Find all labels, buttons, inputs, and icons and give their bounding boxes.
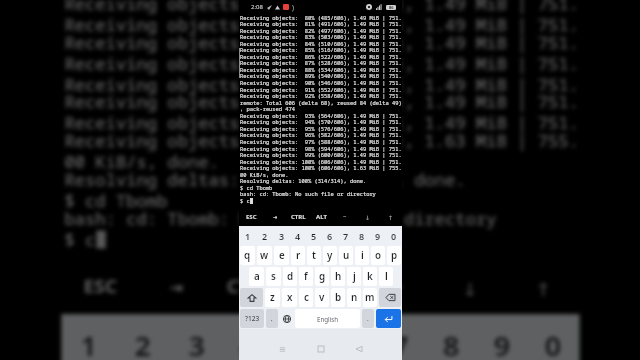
button[interactable]: 8 (427, 314, 478, 360)
button[interactable]: y (323, 246, 337, 265)
button[interactable]: z (265, 288, 280, 307)
button[interactable]: 0 (386, 226, 402, 245)
button[interactable]: a (249, 267, 264, 286)
staticText: ↓ (365, 214, 371, 221)
button[interactable]: − (333, 208, 356, 226)
button[interactable]: c (299, 288, 313, 307)
button[interactable]: ↑ (379, 208, 402, 226)
button[interactable]: l (379, 267, 393, 286)
button[interactable]: ↓ (356, 208, 379, 226)
button[interactable]: e (274, 246, 289, 265)
button[interactable]: Enter (376, 309, 401, 328)
button[interactable]: 1 (61, 314, 115, 360)
button[interactable]: d (283, 267, 297, 286)
button[interactable]: . (362, 309, 374, 328)
button[interactable]: f (299, 267, 313, 286)
staticText: 7 (392, 326, 411, 360)
staticText: Receiving objects: 100% (606/606), 1.63 … (64, 129, 580, 150)
staticText: 2 (134, 326, 154, 360)
button[interactable]: u (339, 246, 353, 265)
staticText: ALT (306, 275, 341, 299)
button[interactable]: i (355, 246, 369, 265)
button[interactable]: g (315, 267, 329, 286)
staticText: Receiving objects: 80% (485/606), 1.49 M… (240, 14, 402, 21)
button[interactable]: s (266, 267, 281, 286)
staticText: Receiving objects: 89% (540/606), 1.49 M… (240, 72, 402, 79)
button[interactable]: w (257, 246, 272, 265)
staticText: , pack-reused 474 (240, 105, 295, 112)
button[interactable]: 6 (325, 314, 376, 360)
staticText: s (271, 270, 276, 283)
button[interactable]: q (240, 246, 255, 265)
button[interactable]: m (363, 288, 377, 307)
button[interactable]: ESC (239, 208, 263, 226)
staticText: b (335, 291, 342, 304)
staticText: 4 (295, 230, 301, 242)
button[interactable]: ?123 (240, 309, 264, 328)
button[interactable]: − (360, 260, 433, 314)
button[interactable]: 4 (223, 314, 274, 360)
button[interactable]: ↑ (506, 260, 580, 314)
button[interactable]: Shift (240, 288, 263, 307)
button[interactable]: 0 (529, 314, 580, 360)
button[interactable]: ALT (287, 260, 360, 314)
staticText: Receiving objects: 98% (594/606), 1.49 M… (240, 145, 402, 152)
staticText: 0 (545, 326, 564, 360)
button[interactable]: Back (340, 338, 378, 360)
staticText: 7 (343, 230, 349, 242)
button[interactable]: , (266, 309, 278, 328)
staticText: u (343, 249, 350, 262)
button[interactable]: 4 (290, 226, 306, 245)
button[interactable]: CTRL (214, 260, 287, 314)
button[interactable]: j (347, 267, 361, 286)
button[interactable]: 7 (376, 314, 427, 360)
staticText: 5 (290, 326, 309, 360)
button[interactable]: 3 (273, 226, 290, 245)
staticText: 8 (443, 326, 462, 360)
staticText: Receiving objects: 97% (588/606), 1.49 M… (240, 138, 402, 145)
button[interactable]: 9 (370, 226, 386, 245)
button[interactable]: 8 (354, 226, 370, 245)
staticText: Receiving objects: 87% (528/606), 1.49 M… (240, 59, 402, 66)
button[interactable]: 5 (274, 314, 325, 360)
button[interactable]: ⇥ (138, 260, 214, 314)
button[interactable]: ALT (310, 208, 333, 226)
button[interactable]: n (347, 288, 361, 307)
button[interactable]: Home (302, 338, 340, 360)
button[interactable]: 9 (478, 314, 529, 360)
staticText: Receiving objects: 95% (576/606), 1.49 M… (64, 13, 580, 34)
button[interactable]: 5 (306, 226, 322, 245)
button[interactable]: o (371, 246, 385, 265)
button[interactable]: 7 (338, 226, 354, 245)
staticText: English (317, 315, 339, 323)
button[interactable]: r (291, 246, 305, 265)
staticText: CTRL (227, 275, 274, 299)
button[interactable]: Change language (280, 309, 293, 328)
staticText: Receiving objects: 82% (497/606), 1.49 M… (240, 27, 402, 34)
button[interactable]: ESC (61, 260, 138, 314)
button[interactable]: b (331, 288, 345, 307)
button[interactable]: 3 (169, 314, 223, 360)
button[interactable]: 6 (322, 226, 338, 245)
button[interactable]: Recents (263, 338, 302, 360)
button[interactable]: k (363, 267, 377, 286)
staticText: Receiving objects: 96% (582/606), 1.49 M… (64, 31, 580, 52)
button[interactable]: CTRL (287, 208, 310, 226)
button[interactable]: x (282, 288, 297, 307)
button[interactable]: t (307, 246, 321, 265)
staticText: Receiving objects: 99% (600/606), 1.49 M… (64, 91, 580, 111)
button[interactable]: English (295, 309, 360, 328)
staticText: Receiving objects: 86% (522/606), 1.49 M… (240, 53, 402, 60)
button[interactable]: v (315, 288, 329, 307)
button[interactable]: 1 (239, 226, 256, 245)
button[interactable]: 2 (115, 314, 169, 360)
button[interactable]: ↓ (433, 260, 506, 314)
button[interactable]: 2 (256, 226, 273, 245)
button[interactable]: h (331, 267, 345, 286)
staticText: o (375, 249, 382, 262)
button[interactable]: Backspace (379, 288, 401, 307)
button[interactable]: p (387, 246, 401, 265)
staticText: 3 (188, 326, 208, 360)
button[interactable]: ⇥ (263, 208, 287, 226)
staticText: 6 (327, 230, 333, 242)
